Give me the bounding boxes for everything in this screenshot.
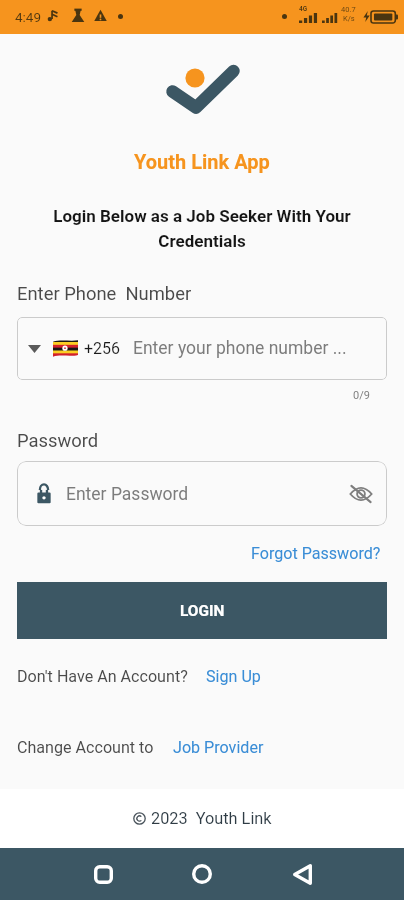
staticText: Sign Up [206, 667, 261, 686]
staticText: Enter Password [66, 484, 189, 505]
button[interactable]: Enter Password [17, 461, 387, 526]
button[interactable]: Select country code [24, 339, 44, 359]
staticText: Job Provider [173, 738, 264, 757]
button[interactable]: Job Provider [173, 738, 264, 757]
staticText: Enter Phone Number [17, 283, 192, 305]
staticText: +256 [84, 339, 121, 358]
button[interactable]: LOGIN [17, 582, 387, 639]
button[interactable]: Select country code [17, 317, 387, 380]
staticText: K/s [343, 14, 355, 23]
staticText: LOGIN [180, 602, 225, 620]
staticText: Change Account to [17, 738, 154, 757]
staticText: 0/9 [353, 389, 370, 402]
staticText: Login Below as a Job Seeker With Your Cr… [34, 206, 370, 251]
staticText: Forgot Password? [251, 544, 381, 563]
button[interactable]: Sign Up [206, 667, 261, 686]
button[interactable]: Forgot Password? [251, 544, 381, 563]
staticText: 4:49 [15, 9, 42, 25]
staticText: Enter your phone number ... [133, 338, 347, 359]
button[interactable]: Show password [346, 479, 376, 509]
staticText: Don't Have An Account? [17, 667, 188, 686]
button[interactable]: Back [278, 850, 326, 898]
staticText: 40.7 [341, 5, 356, 14]
staticText: Password [17, 430, 99, 452]
staticText: Youth Link App [134, 150, 270, 173]
button[interactable]: Home [178, 850, 226, 898]
staticText: 2023 Youth Link [151, 809, 272, 828]
button[interactable]: Recents [79, 850, 128, 898]
staticText: 4G [299, 5, 308, 13]
